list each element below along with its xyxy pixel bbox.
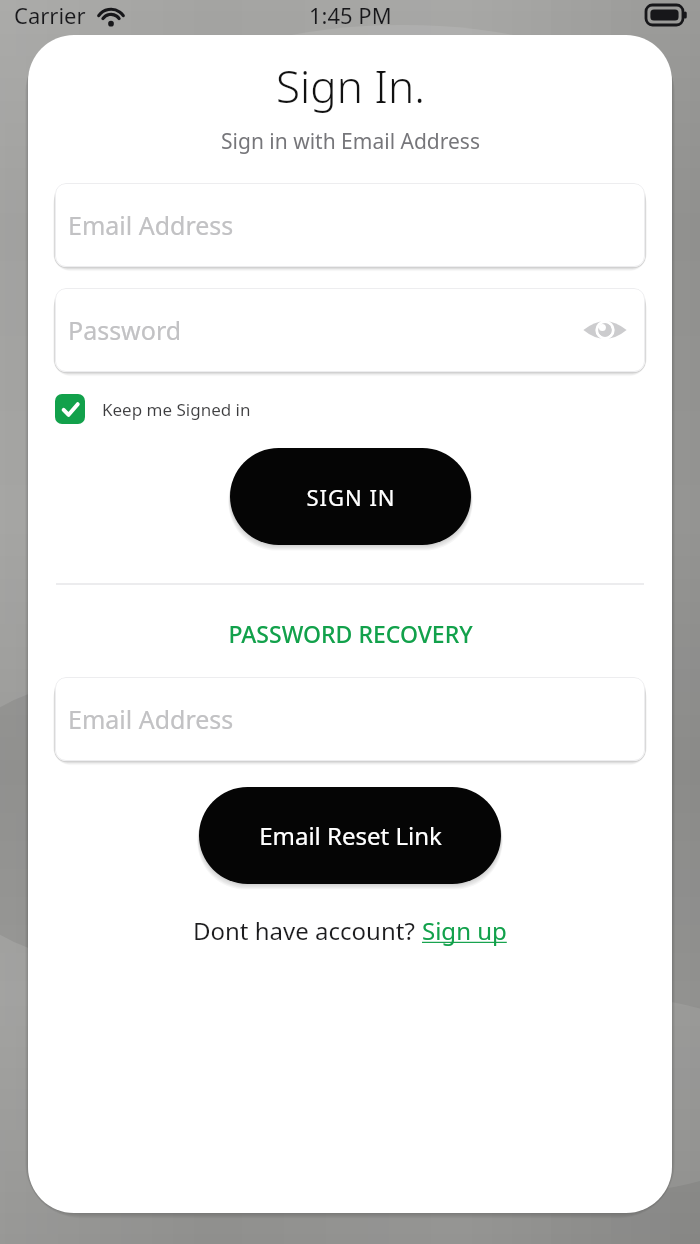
staticText: 1:45 PM	[309, 0, 392, 30]
staticText: Dont have account?	[193, 914, 422, 947]
button[interactable]: Email Address	[55, 677, 645, 761]
staticText: Sign in with Email Address	[221, 127, 480, 156]
button[interactable]: Email Address	[55, 183, 645, 267]
button[interactable]: Sign up	[422, 914, 507, 947]
staticText: Email Address	[68, 208, 234, 242]
button[interactable]: Email Reset Link	[199, 787, 501, 884]
button[interactable]: Keep me Signed in	[55, 390, 645, 428]
staticText: Email Reset Link	[259, 819, 442, 852]
staticText: Carrier	[14, 0, 86, 30]
other: Battery	[646, 5, 688, 25]
staticText: Sign In.	[276, 56, 425, 116]
staticText: Keep me Signed in	[102, 398, 251, 421]
other: Wi-Fi	[96, 4, 126, 26]
staticText: Password	[68, 313, 182, 347]
button[interactable]: Show password	[579, 304, 631, 356]
staticText: Email Address	[68, 702, 234, 736]
staticText: SIGN IN	[306, 482, 396, 512]
button[interactable]: Password	[55, 288, 645, 372]
button[interactable]: SIGN IN	[230, 448, 471, 545]
button[interactable]: PASSWORD RECOVERY	[228, 618, 473, 649]
